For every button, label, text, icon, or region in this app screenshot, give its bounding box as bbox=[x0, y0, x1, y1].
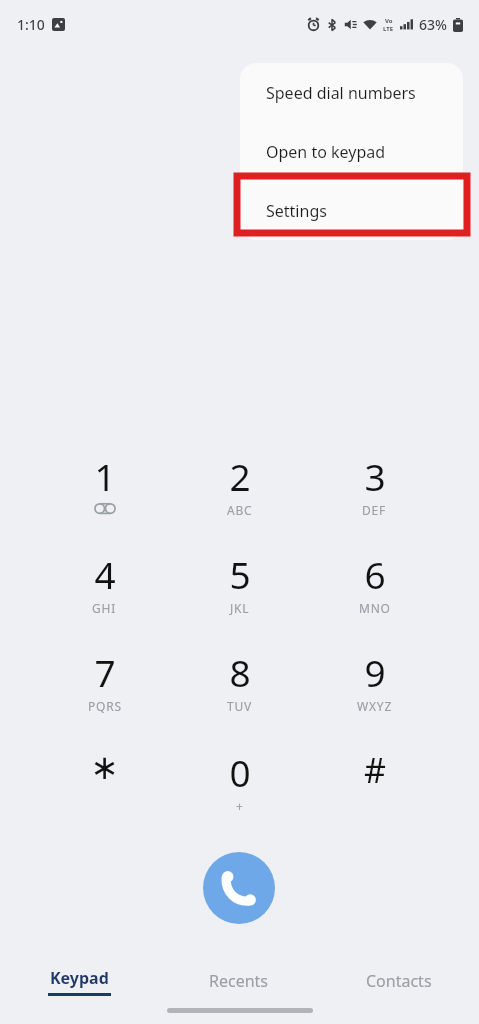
staticText: GHI bbox=[92, 600, 117, 616]
button[interactable]: Key ∗ bbox=[37, 735, 172, 821]
staticText: Speed dial numbers bbox=[266, 82, 416, 104]
staticText: 3 bbox=[364, 451, 386, 501]
staticText: 1 bbox=[94, 451, 116, 501]
staticText: 0 bbox=[229, 747, 251, 797]
staticText: Vo bbox=[385, 17, 393, 25]
button[interactable]: Key 5 bbox=[172, 539, 307, 637]
button[interactable]: Key 9 bbox=[307, 637, 442, 735]
staticText: 7 bbox=[94, 647, 116, 697]
button[interactable]: Key 3 bbox=[307, 441, 442, 539]
button[interactable]: Key 0 bbox=[172, 735, 307, 821]
button[interactable]: Key 1 bbox=[37, 441, 172, 539]
staticText: 63% bbox=[419, 15, 447, 34]
staticText: Contacts bbox=[366, 970, 432, 992]
staticText: TUV bbox=[227, 698, 253, 714]
staticText: DEF bbox=[362, 502, 387, 518]
staticText: ABC bbox=[227, 502, 253, 518]
staticText: 6 bbox=[364, 549, 386, 599]
button[interactable]: Recents bbox=[159, 954, 319, 1008]
staticText: LTE bbox=[383, 25, 394, 33]
staticText: Open to keypad bbox=[266, 141, 386, 163]
staticText: WXYZ bbox=[357, 698, 393, 714]
staticText: 9 bbox=[364, 647, 386, 697]
button[interactable]: Speed dial numbers bbox=[240, 63, 463, 122]
button[interactable]: Key 6 bbox=[307, 539, 442, 637]
staticText: Keypad bbox=[50, 967, 109, 989]
staticText: PQRS bbox=[88, 698, 122, 714]
button[interactable]: Call bbox=[203, 852, 275, 924]
button[interactable]: Key 2 bbox=[172, 441, 307, 539]
staticText: JKL bbox=[230, 600, 250, 616]
staticText: Recents bbox=[209, 970, 269, 992]
staticText: # bbox=[364, 747, 386, 793]
button[interactable]: Settings bbox=[240, 181, 463, 240]
button[interactable]: Contacts bbox=[319, 954, 479, 1008]
button[interactable]: Open to keypad bbox=[240, 122, 463, 181]
button[interactable]: Key 8 bbox=[172, 637, 307, 735]
staticText: 1:10 bbox=[17, 15, 45, 34]
button[interactable]: Key # bbox=[307, 735, 442, 821]
staticText: + bbox=[236, 798, 244, 814]
staticText: 8 bbox=[229, 647, 251, 697]
button[interactable]: Key 7 bbox=[37, 637, 172, 735]
button[interactable]: Keypad bbox=[0, 954, 159, 1008]
staticText: 2 bbox=[229, 451, 251, 501]
staticText: 4 bbox=[94, 549, 116, 599]
staticText: Settings bbox=[266, 200, 327, 222]
staticText: ∗ bbox=[90, 747, 119, 787]
staticText: 5 bbox=[229, 549, 251, 599]
button[interactable]: Key 4 bbox=[37, 539, 172, 637]
staticText: MNO bbox=[359, 600, 391, 616]
